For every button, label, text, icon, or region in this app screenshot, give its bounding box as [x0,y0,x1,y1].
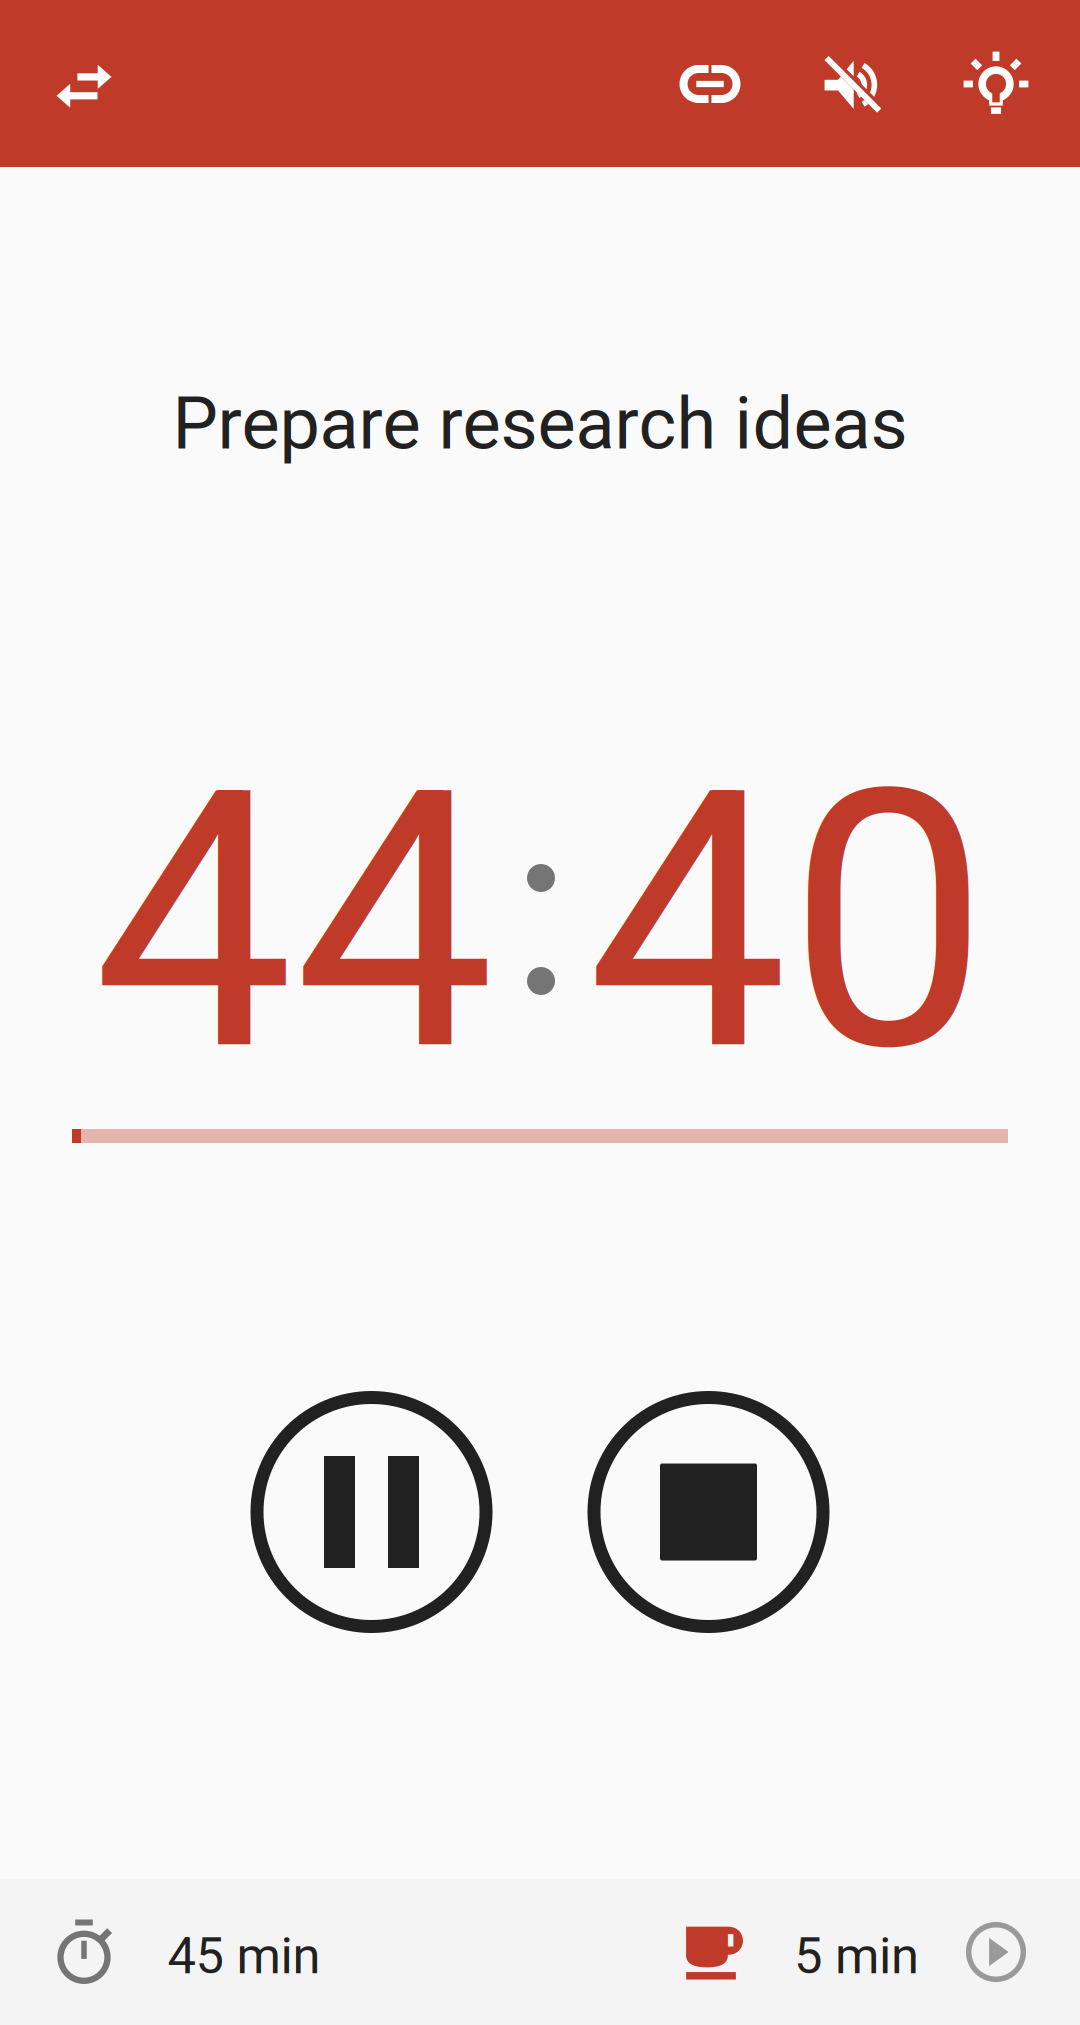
staticText: Prepare research ideas [172,382,907,466]
button[interactable]: Keep screen on [934,22,1058,146]
button[interactable]: Start break [938,1879,1054,2025]
staticText: 40 [587,713,989,1131]
button[interactable]: 5 min [649,1879,955,2025]
staticText: 5 min [794,1926,919,1986]
button[interactable]: 45 min [1,1879,390,2025]
staticText: 45 min [167,1926,320,1986]
button[interactable]: Link timers [648,22,772,146]
button[interactable]: Swap work and break [22,25,146,149]
button[interactable]: Pause [250,1391,492,1633]
button[interactable]: Stop [587,1391,829,1633]
button[interactable]: Mute [790,22,914,146]
staticText: 44 [93,713,495,1131]
